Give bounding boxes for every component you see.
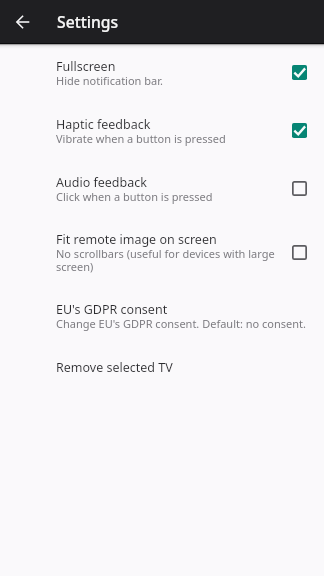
staticText: Change EU's GDPR consent. Default: no co… [56,318,306,331]
staticText: EU's GDPR consent [56,303,168,318]
staticText: Fullscreen [56,60,116,75]
staticText: Haptic feedback [56,118,151,133]
other: Fullscreen, checked [292,65,307,80]
staticText: No scrollbars (useful for devices with l… [56,248,284,274]
staticText: Hide notification bar. [56,75,163,88]
button[interactable]: Navigate up [0,0,43,43]
button[interactable]: Fullscreen [0,43,324,101]
button[interactable]: Fit remote image on screen [0,216,324,287]
staticText: Audio feedback [56,176,147,191]
button[interactable]: EU's GDPR consent [0,286,324,344]
other: Fit remote image on screen, not checked [292,245,307,260]
staticText: Settings [57,11,119,32]
button[interactable]: Audio feedback [0,158,324,216]
staticText: Click when a button is pressed [56,191,213,204]
staticText: Fit remote image on screen [56,233,217,248]
other: Audio feedback, not checked [292,181,307,196]
staticText: Remove selected TV [56,361,173,376]
button[interactable]: Remove selected TV [0,344,324,389]
staticText: Vibrate when a button is pressed [56,133,226,146]
button[interactable]: Haptic feedback [0,101,324,159]
other: Haptic feedback, checked [292,123,307,138]
